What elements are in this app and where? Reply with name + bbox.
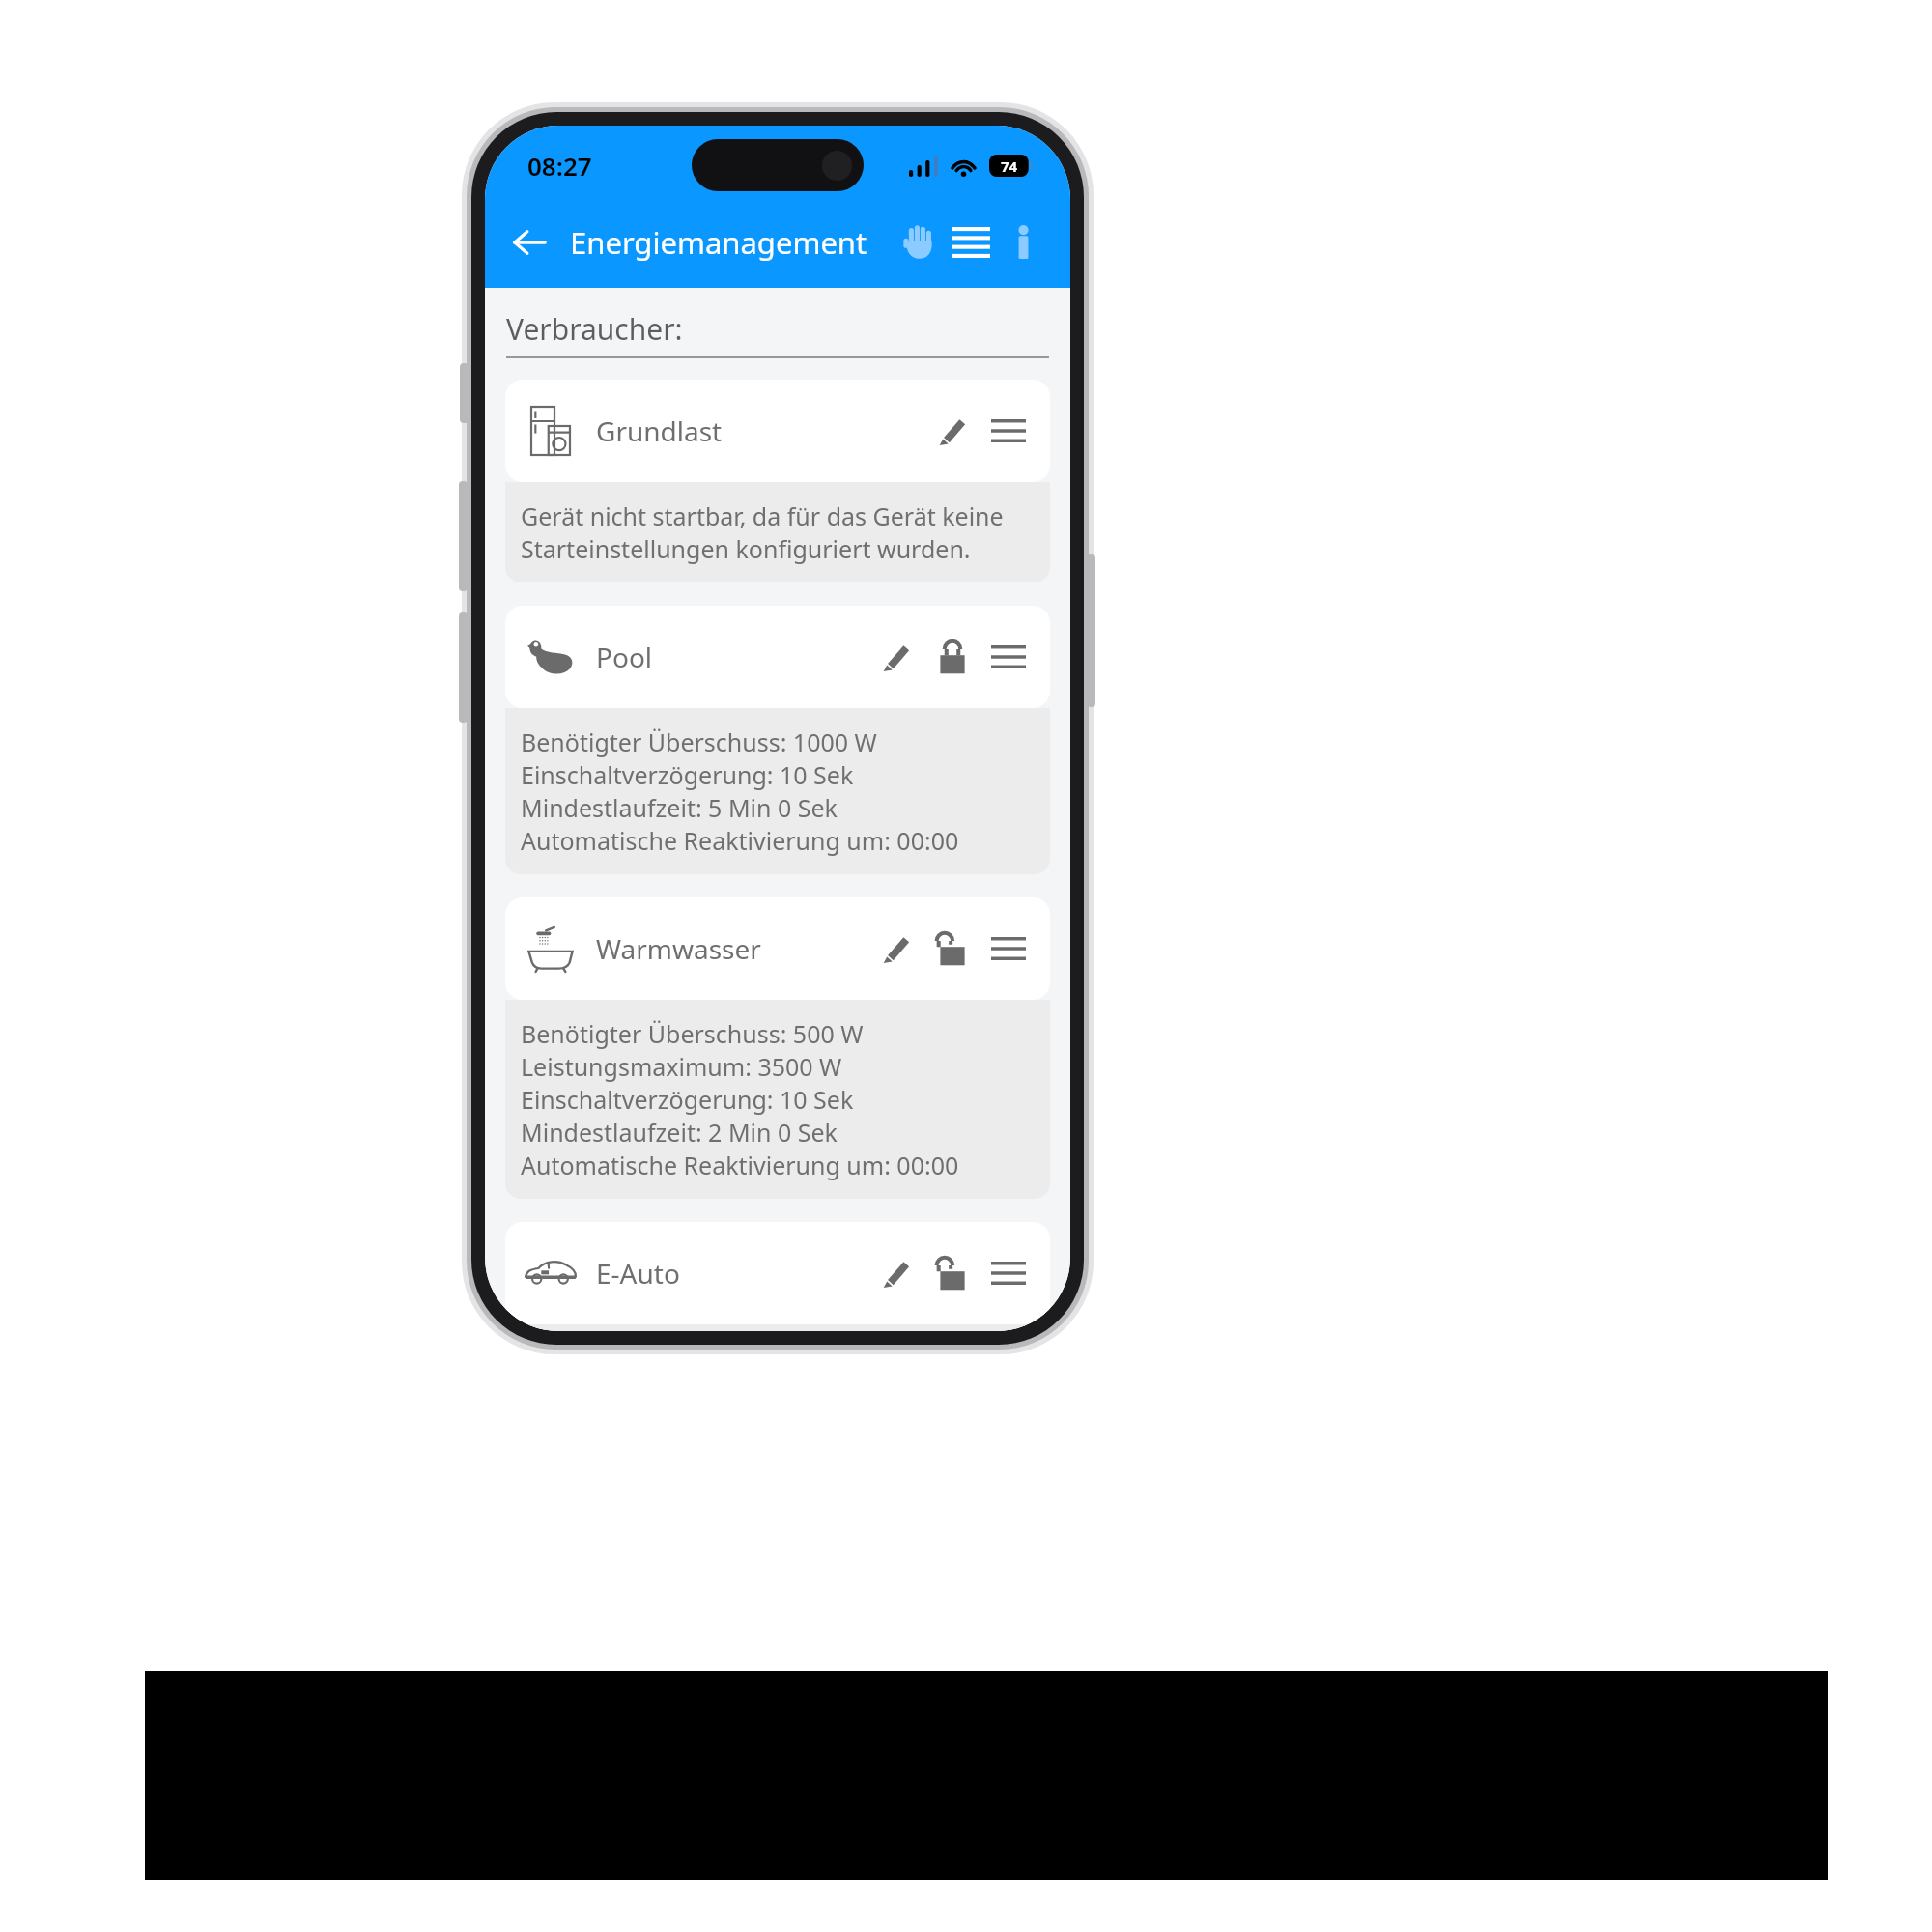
button[interactable]: Reorder Grundlast: [984, 407, 1033, 455]
button[interactable]: Reorder Pool: [984, 633, 1033, 681]
staticText: Pool: [596, 639, 653, 675]
staticText: Einschaltverzögerung: 10 Sek: [521, 1083, 854, 1116]
button[interactable]: Unlocked Warmwasser: [928, 924, 977, 973]
button[interactable]: Locked Pool: [928, 633, 977, 681]
staticText: 74: [1001, 156, 1018, 176]
staticText: E-Auto: [596, 1255, 680, 1292]
button[interactable]: Reorder Warmwasser: [984, 924, 1033, 973]
staticText: Einschaltverzögerung: 10 Sek: [521, 758, 854, 791]
button[interactable]: Edit Pool: [872, 633, 921, 681]
button[interactable]: E-Auto: [505, 1222, 1050, 1324]
button[interactable]: Back: [502, 215, 556, 270]
staticText: Automatische Reaktivierung um: 00:00: [521, 1149, 959, 1181]
staticText: Gerät nicht startbar, da für das Gerät k…: [521, 499, 1004, 532]
staticText: Automatische Reaktivierung um: 00:00: [521, 824, 959, 857]
staticText: Energiemanagement: [570, 222, 867, 263]
button[interactable]: Edit Warmwasser: [872, 924, 921, 973]
button[interactable]: Unlocked E-Auto: [928, 1249, 977, 1297]
staticText: 08:27: [527, 149, 592, 183]
staticText: Starteinstellungen konfiguriert wurden.: [521, 532, 971, 565]
staticText: Benötigter Überschuss: 1000 W: [521, 725, 877, 758]
button[interactable]: Menu: [945, 216, 997, 269]
button[interactable]: Reorder E-Auto: [984, 1249, 1033, 1297]
staticText: Mindestlaufzeit: 5 Min 0 Sek: [521, 791, 838, 824]
staticText: Verbraucher:: [506, 309, 683, 349]
staticText: Leistungsmaximum: 3500 W: [521, 1050, 842, 1083]
button[interactable]: Manual control: [893, 216, 945, 269]
button[interactable]: Warmwasser: [505, 897, 1050, 1000]
button[interactable]: Pool: [505, 606, 1050, 708]
button[interactable]: Info: [997, 216, 1049, 269]
button[interactable]: Grundlast: [505, 380, 1050, 482]
staticText: Grundlast: [596, 412, 723, 449]
staticText: Benötigter Überschuss: 500 W: [521, 1017, 864, 1050]
staticText: Mindestlaufzeit: 2 Min 0 Sek: [521, 1116, 838, 1149]
button[interactable]: Edit E-Auto: [872, 1249, 921, 1297]
staticText: Warmwasser: [596, 930, 761, 967]
button[interactable]: Edit Grundlast: [928, 407, 977, 455]
